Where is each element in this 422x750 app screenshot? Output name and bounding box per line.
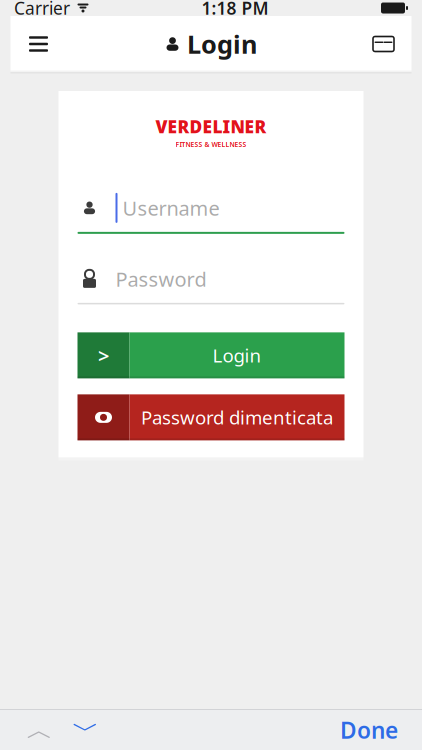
button[interactable]: Done bbox=[328, 710, 410, 750]
staticText: Carrier bbox=[14, 0, 70, 19]
button[interactable]: Messages bbox=[355, 16, 411, 72]
staticText: Password bbox=[115, 266, 206, 292]
staticText: FITNESS & WELLNESS bbox=[175, 140, 246, 149]
staticText: Done bbox=[340, 715, 398, 745]
button[interactable]: Login bbox=[77, 332, 344, 378]
button[interactable]: Password dimenticata bbox=[77, 394, 344, 440]
button[interactable]: Previous field bbox=[20, 710, 60, 750]
button[interactable]: Next field bbox=[66, 710, 106, 750]
staticText: Username bbox=[122, 195, 219, 221]
button[interactable]: Menu bbox=[10, 16, 66, 72]
staticText: VERDELINER bbox=[155, 115, 266, 138]
staticText: Login bbox=[212, 343, 261, 368]
staticText: ﹀ bbox=[72, 714, 99, 746]
staticText: ︿ bbox=[26, 714, 53, 746]
staticText: 1:18 PM bbox=[201, 0, 268, 19]
staticText: Password dimenticata bbox=[141, 405, 333, 430]
staticText: Login bbox=[187, 27, 257, 61]
staticText: > bbox=[98, 342, 109, 369]
